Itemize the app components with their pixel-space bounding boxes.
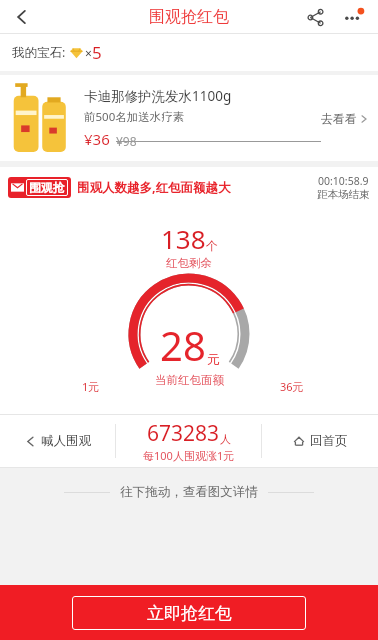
staticText: 138 — [161, 221, 206, 256]
staticText: 往下拖动，查看图文详情 — [120, 484, 258, 500]
button[interactable]: 立即抢红包 — [72, 596, 306, 630]
staticText: 回首页 — [310, 433, 348, 449]
staticText: 5 — [92, 41, 102, 64]
staticText: ¥36 — [84, 129, 110, 149]
staticText: 673283 — [147, 419, 220, 448]
staticText: 围观抢 — [29, 180, 65, 195]
staticText: 当前红包面额 — [155, 373, 224, 387]
button[interactable]: 喊人围观 — [0, 415, 115, 467]
button[interactable]: Back — [0, 0, 44, 34]
staticText: 红包剩余 — [166, 256, 212, 270]
button[interactable]: More options — [334, 0, 372, 34]
button[interactable]: 去看看 — [321, 111, 368, 126]
button[interactable]: 卡迪那修护洗发水1100g — [0, 75, 378, 161]
staticText: 我的宝石: — [12, 44, 66, 61]
staticText: 元 — [207, 351, 220, 367]
staticText: 围观人数越多,红包面额越大 — [77, 179, 231, 196]
staticText: ¥98 — [116, 133, 137, 149]
staticText: 28 — [160, 318, 206, 372]
staticText: 每100人围观涨1元 — [143, 448, 235, 463]
staticText: 1元 — [82, 379, 100, 394]
staticText: 去看看 — [321, 111, 357, 126]
staticText: 距本场结束 — [317, 188, 370, 201]
staticText: 个 — [206, 238, 218, 253]
button[interactable]: 回首页 — [262, 415, 378, 467]
staticText: 人 — [220, 432, 231, 446]
staticText: 36元 — [280, 379, 304, 394]
staticText: 卡迪那修护洗发水1100g — [84, 87, 232, 105]
staticText: × — [85, 45, 92, 61]
staticText: 00:10:58.9 — [318, 174, 369, 188]
staticText: 立即抢红包 — [147, 603, 232, 624]
button[interactable]: Share — [296, 0, 334, 34]
staticText: 喊人围观 — [41, 433, 91, 449]
staticText: 前500名加送水疗素 — [84, 109, 185, 125]
staticText: 围观抢红包 — [149, 7, 229, 27]
